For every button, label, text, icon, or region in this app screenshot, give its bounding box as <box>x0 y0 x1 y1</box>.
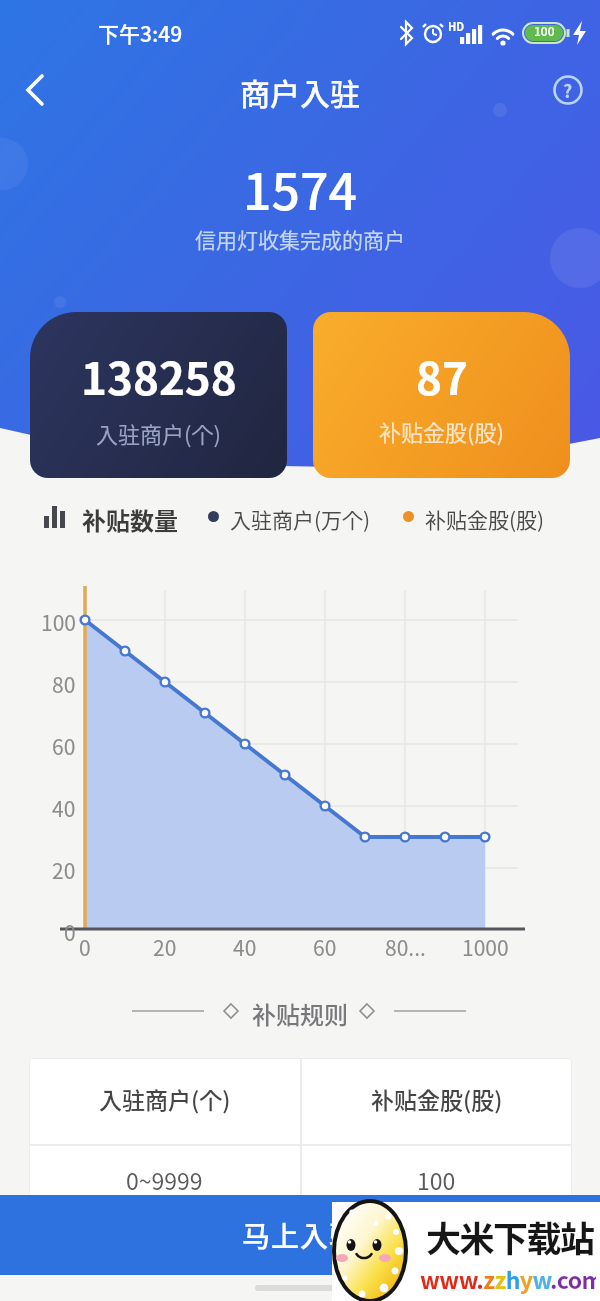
staticText: 100 <box>41 607 76 633</box>
button[interactable]: ? <box>548 70 588 110</box>
staticText: 马上入驻 <box>242 1215 359 1256</box>
staticText: 100 <box>534 22 555 38</box>
staticText: 补贴金股(股) <box>425 504 545 530</box>
staticText: 20 <box>52 855 76 881</box>
button[interactable]: 87 <box>313 312 570 478</box>
staticText: 入驻商户(个) <box>99 1082 231 1112</box>
staticText: 商户入驻 <box>240 70 360 110</box>
staticText: 信用灯收集完成的商户 <box>195 224 405 254</box>
staticText: 87 <box>416 344 468 400</box>
staticText: 入驻商户(个) <box>96 417 221 447</box>
button[interactable]: 138258 <box>30 312 287 478</box>
staticText: 40 <box>52 793 76 819</box>
staticText: 0 <box>79 932 91 958</box>
staticText: 80... <box>385 932 426 958</box>
staticText: 大米下载站 <box>426 1211 594 1262</box>
staticText: 1574 <box>243 152 357 214</box>
staticText: 60 <box>313 932 337 958</box>
staticText: 补贴金股(股) <box>371 1082 503 1112</box>
staticText: 入驻商户(万个) <box>230 504 371 530</box>
staticText: 1000 <box>462 932 509 958</box>
staticText: 100 <box>417 1163 456 1193</box>
staticText: 0 <box>64 917 76 943</box>
staticText: 补贴数量 <box>82 502 178 532</box>
staticText: 补贴金股(股) <box>379 415 504 445</box>
staticText: 20 <box>153 932 177 958</box>
staticText: 0~9999 <box>126 1163 203 1193</box>
staticText: 80 <box>52 669 76 695</box>
staticText: 下午3:49 <box>98 18 183 48</box>
staticText: 补贴规则 <box>252 996 348 1028</box>
staticText: HD <box>448 18 465 32</box>
staticText: 60 <box>52 731 76 757</box>
button[interactable] <box>14 68 58 112</box>
staticText: 138258 <box>81 344 237 400</box>
staticText: 40 <box>233 932 257 958</box>
button[interactable]: 马上入驻 <box>0 1195 600 1275</box>
staticText: www.zzhyw.com <box>420 1262 596 1294</box>
staticText: ? <box>563 77 573 103</box>
